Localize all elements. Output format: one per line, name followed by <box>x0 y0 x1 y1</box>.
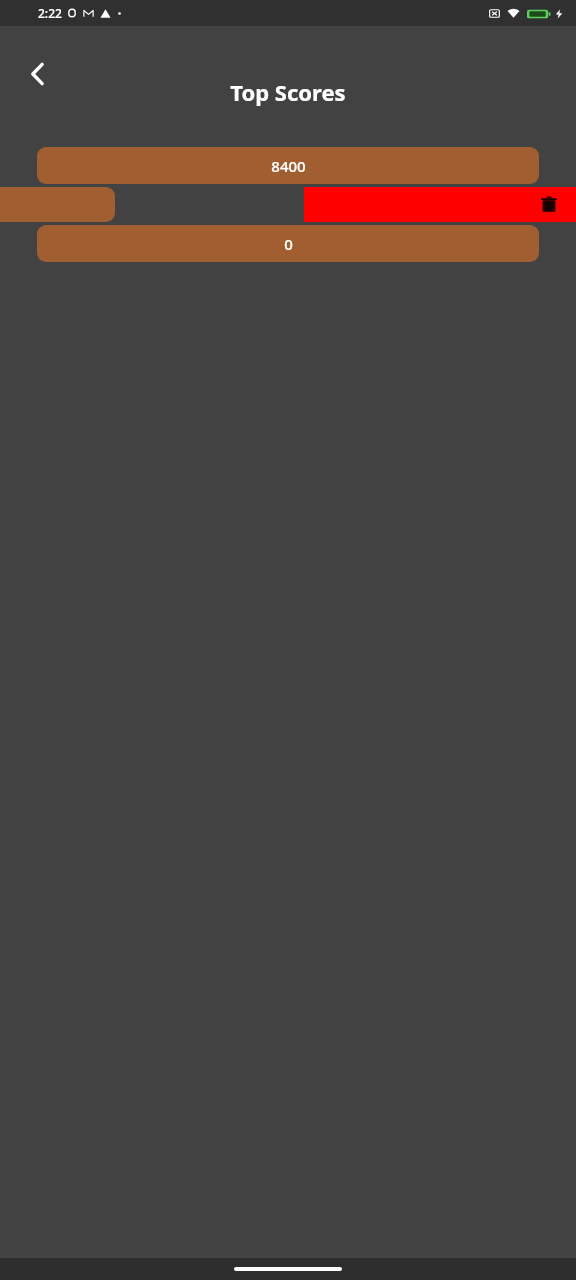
staticText: 2:22 <box>38 5 62 21</box>
button[interactable]: 8400 <box>37 147 539 184</box>
staticText: Top Scores <box>0 77 576 107</box>
button[interactable]: 10000 <box>0 187 115 222</box>
button[interactable]: 0 <box>37 225 539 262</box>
staticText: 8400 <box>271 156 306 176</box>
button[interactable]: Back <box>12 48 64 100</box>
button[interactable]: Delete <box>304 187 576 222</box>
staticText: 0 <box>284 234 293 254</box>
